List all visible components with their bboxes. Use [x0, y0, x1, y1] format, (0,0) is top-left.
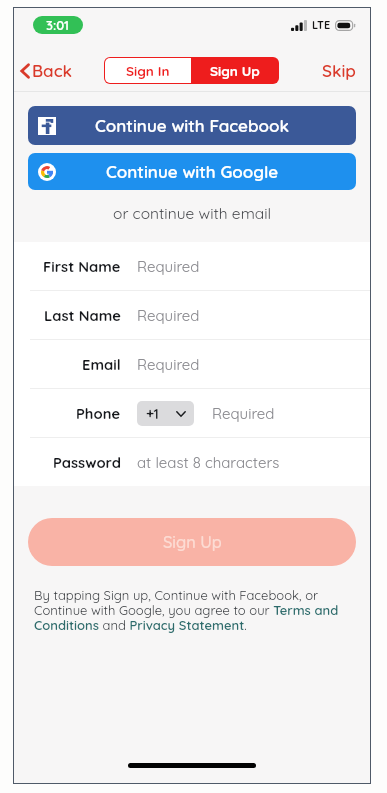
staticText: Continue with Facebook [95, 115, 290, 136]
staticText: or continue with email [113, 203, 272, 222]
button[interactable]: Back [15, 54, 78, 87]
staticText: Phone [76, 404, 121, 422]
staticText: Back [32, 60, 73, 81]
staticText: Continue with Google [106, 161, 279, 182]
staticText: +1 [146, 405, 159, 423]
staticText: at least 8 characters [137, 453, 280, 472]
staticText: Required [137, 257, 200, 276]
staticText: Required [137, 355, 200, 374]
button[interactable]: Email [13, 340, 371, 388]
staticText: Required [212, 404, 275, 423]
button[interactable]: Skip [316, 54, 362, 87]
button[interactable]: Sign Up [28, 518, 356, 566]
staticText: By tapping Sign up, Continue with Facebo… [34, 587, 341, 633]
button[interactable]: +1 [137, 401, 194, 426]
staticText: First Name [43, 257, 121, 275]
staticText: LTE [312, 18, 331, 32]
staticText: Email [82, 355, 121, 373]
staticText: Sign Up [210, 62, 260, 79]
staticText: Required [137, 306, 200, 325]
button[interactable]: Phone [13, 389, 371, 437]
button[interactable]: Continue with Facebook [28, 106, 356, 145]
staticText: Skip [322, 60, 356, 81]
staticText: 3:01 [46, 17, 70, 33]
button[interactable]: Sign Up [191, 58, 278, 83]
button[interactable]: Last Name [13, 291, 371, 339]
staticText: Last Name [44, 306, 121, 324]
button[interactable]: Password [13, 438, 371, 486]
button[interactable]: Sign In [105, 58, 191, 83]
staticText: Sign Up [163, 532, 222, 552]
button[interactable]: First Name [13, 242, 371, 290]
staticText: Password [53, 453, 121, 471]
button[interactable]: Continue with Google [28, 153, 356, 190]
staticText: Sign In [126, 62, 170, 79]
